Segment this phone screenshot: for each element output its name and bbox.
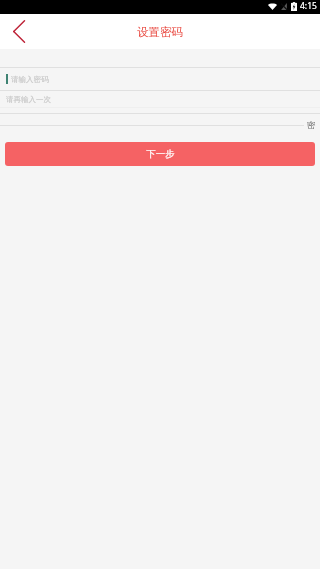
staticText: 请再输入一次	[6, 95, 51, 104]
staticText: 设置密码	[137, 25, 183, 39]
staticText: 密	[307, 120, 316, 131]
staticText: 4:15	[300, 0, 317, 12]
staticText: 请输入密码	[11, 75, 49, 84]
button[interactable]: 请再输入一次	[0, 91, 320, 107]
button[interactable]: 返回	[0, 14, 38, 49]
staticText: 下一步	[146, 148, 175, 160]
button[interactable]: 显示密码	[306, 120, 317, 131]
button[interactable]: 请输入密码	[0, 68, 320, 90]
button[interactable]: 下一步	[5, 142, 315, 166]
